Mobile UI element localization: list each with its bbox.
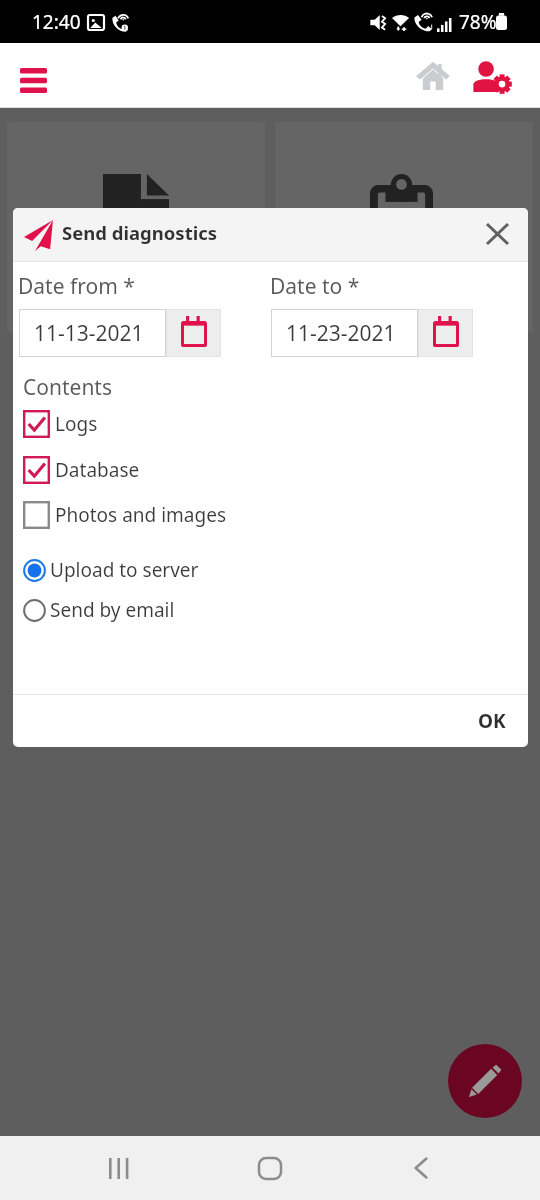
staticText: Send diagnostics bbox=[62, 220, 218, 245]
button[interactable]: Close bbox=[475, 212, 519, 256]
button[interactable]: Menu bbox=[7, 54, 59, 106]
button[interactable]: Home bbox=[407, 49, 459, 101]
staticText: Send by email bbox=[50, 597, 175, 623]
staticText: OK bbox=[478, 708, 506, 734]
button[interactable]: Photos and images bbox=[13, 496, 528, 534]
button[interactable]: 11-23-2021 bbox=[271, 309, 473, 357]
button[interactable]: Upload to server bbox=[13, 553, 528, 587]
staticText: Database bbox=[55, 457, 140, 483]
staticText: Date to * bbox=[270, 272, 360, 301]
button[interactable]: Account settings bbox=[466, 50, 518, 102]
staticText: Upload to server bbox=[50, 557, 199, 583]
button[interactable]: Logs bbox=[13, 405, 528, 443]
button[interactable]: Home bbox=[246, 1144, 294, 1192]
button[interactable] bbox=[275, 122, 533, 332]
staticText: Logs bbox=[55, 411, 98, 437]
button[interactable]: 11-13-2021 bbox=[19, 309, 221, 357]
button[interactable]: Database bbox=[13, 451, 528, 489]
staticText: 78% bbox=[459, 9, 497, 35]
staticText: Date from * bbox=[18, 272, 135, 301]
staticText: 12:40 bbox=[32, 9, 81, 35]
button[interactable]: Recent apps bbox=[95, 1144, 143, 1192]
staticText: 11-13-2021 bbox=[34, 319, 144, 348]
button[interactable]: OK bbox=[468, 700, 516, 742]
staticText: Photos and images bbox=[55, 502, 226, 528]
button[interactable]: Edit bbox=[448, 1044, 522, 1118]
button[interactable]: Back bbox=[397, 1144, 445, 1192]
staticText: 11-23-2021 bbox=[286, 319, 396, 348]
button[interactable]: Send by email bbox=[13, 593, 528, 627]
button[interactable] bbox=[7, 122, 265, 332]
staticText: Contents bbox=[23, 373, 112, 402]
